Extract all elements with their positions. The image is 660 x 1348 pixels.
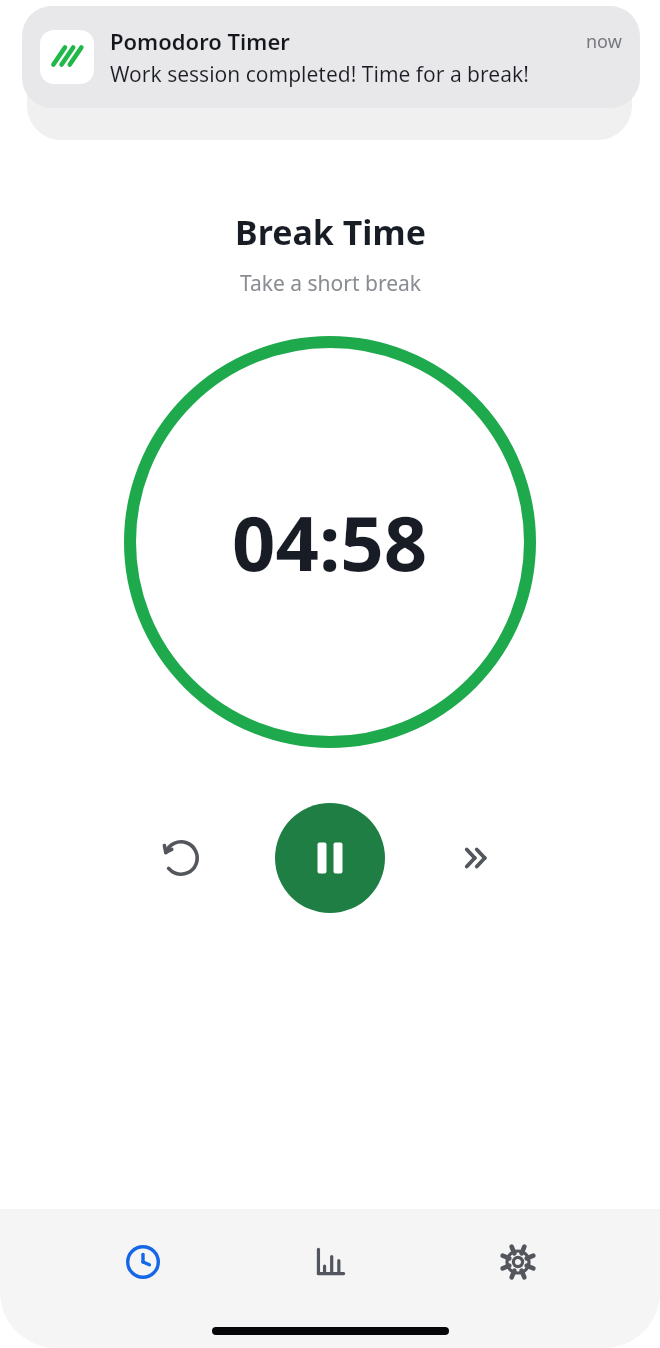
button[interactable]: Timer — [98, 1231, 188, 1293]
staticText: Pomodoro Timer — [110, 26, 290, 56]
button[interactable]: Pomodoro Timer — [22, 6, 640, 108]
button[interactable]: Statistics — [285, 1231, 375, 1293]
button[interactable]: Skip — [448, 827, 510, 889]
button[interactable]: Pause — [275, 803, 385, 913]
button[interactable]: Settings — [473, 1231, 563, 1293]
staticText: Take a short break — [240, 269, 421, 298]
staticText: Break Time — [235, 209, 426, 255]
staticText: now — [586, 29, 622, 54]
button[interactable]: Reset — [150, 827, 212, 889]
staticText: 04:58 — [232, 490, 428, 594]
staticText: Work session completed! Time for a break… — [110, 60, 529, 89]
